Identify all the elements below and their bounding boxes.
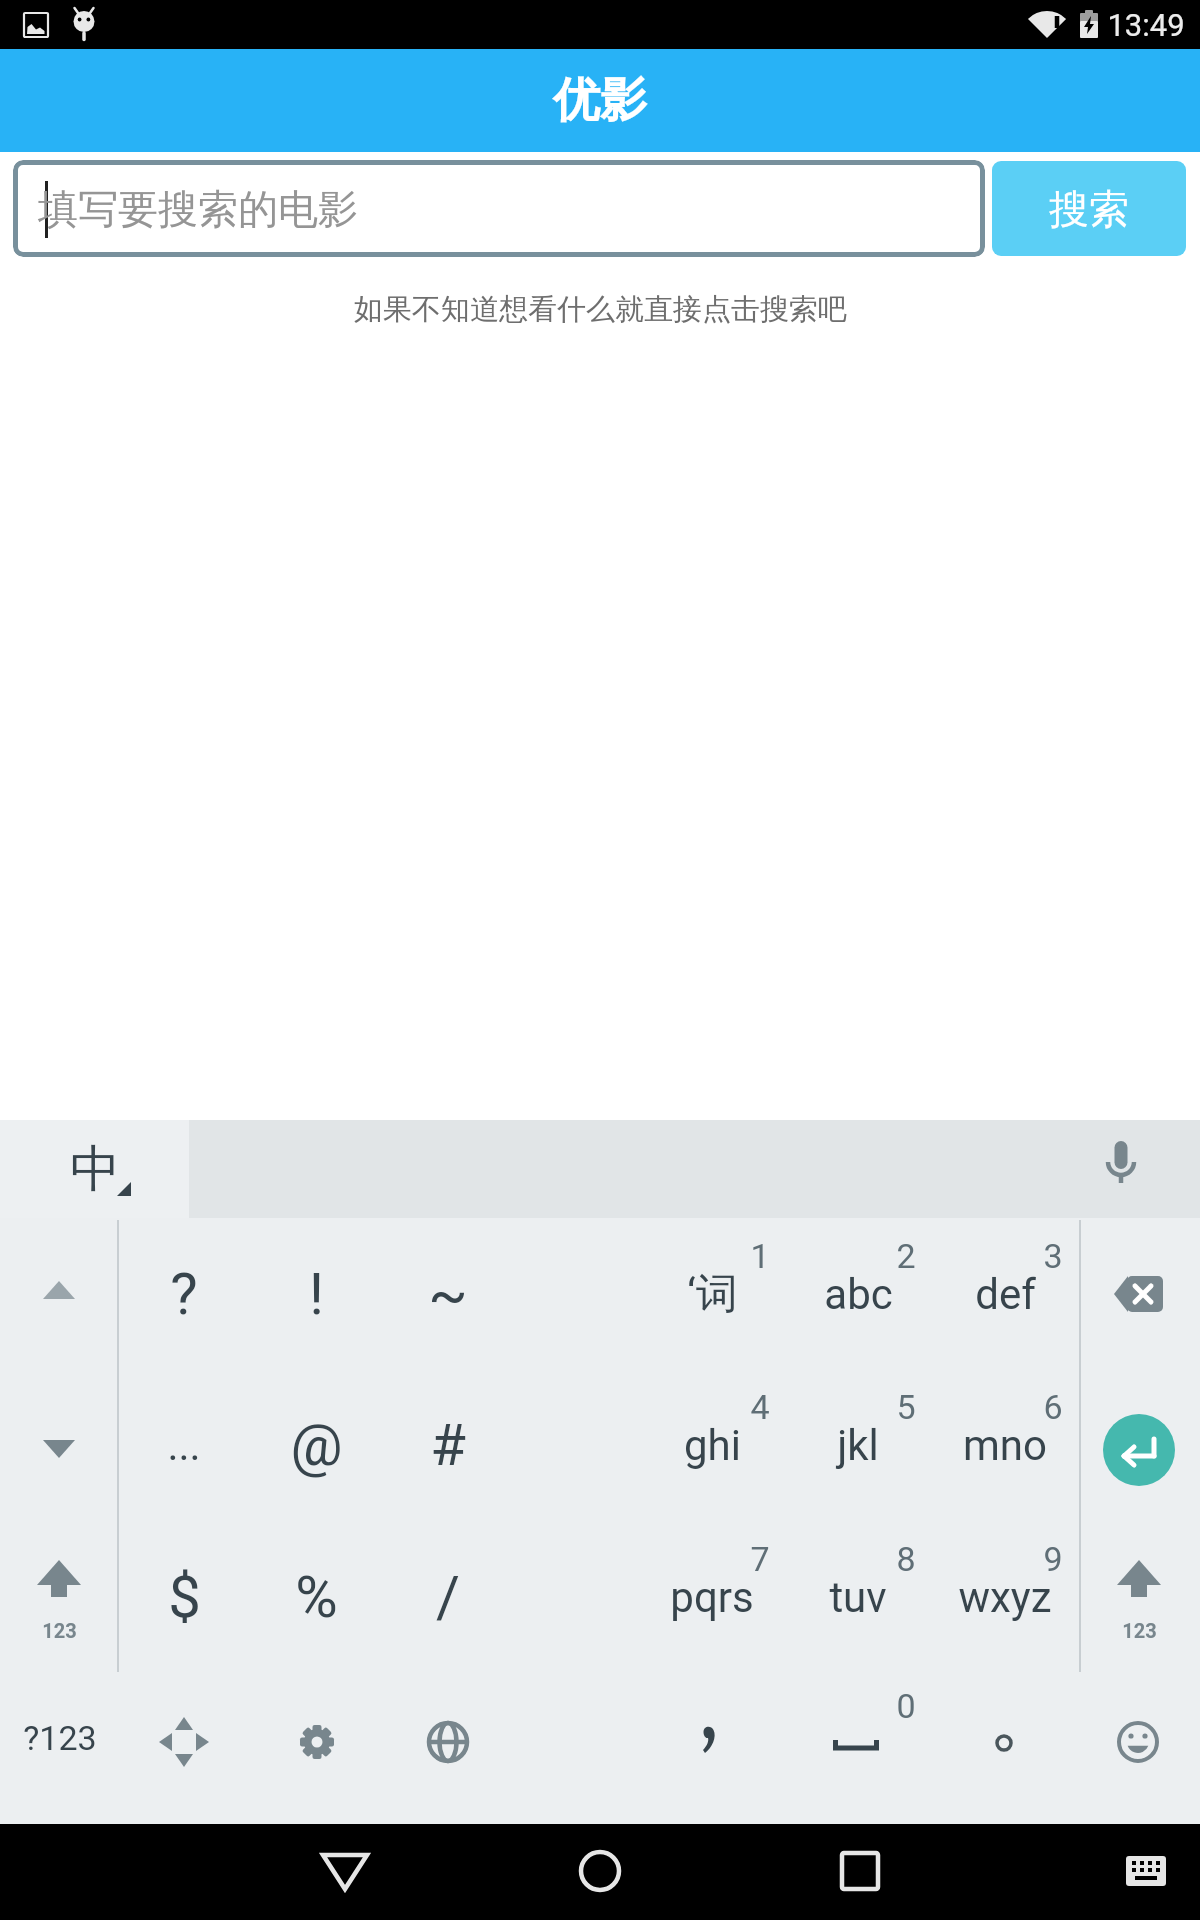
button[interactable] (1091, 1135, 1151, 1203)
button[interactable]: ~ (383, 1239, 513, 1349)
button[interactable]: ghi (647, 1390, 777, 1500)
button[interactable] (19, 1405, 99, 1485)
button[interactable]: ?123 (10, 1708, 110, 1768)
staticText: 6 (1043, 1387, 1063, 1427)
button[interactable]: abc (793, 1239, 923, 1349)
staticText: ‘词 (687, 1268, 738, 1321)
button[interactable] (959, 1698, 1049, 1788)
button[interactable]: / (383, 1542, 513, 1652)
staticText: abc (824, 1270, 893, 1319)
button[interactable]: 搜索 (992, 161, 1186, 256)
staticText: mno (963, 1421, 1047, 1470)
button[interactable]: % (251, 1542, 381, 1652)
staticText: 5 (896, 1387, 916, 1427)
staticText: tuv (829, 1573, 887, 1622)
staticText: 优影 (553, 71, 647, 130)
button[interactable] (19, 1254, 99, 1334)
button[interactable] (14, 1537, 104, 1657)
staticText: 填写要搜索的电影 (38, 184, 358, 234)
staticText: $ (168, 1563, 201, 1631)
button[interactable]: def (940, 1239, 1070, 1349)
button[interactable]: @ (251, 1390, 381, 1500)
staticText: 中 (70, 1138, 120, 1201)
button[interactable]: ! (251, 1239, 381, 1349)
button[interactable]: pqrs (647, 1542, 777, 1652)
button[interactable]: ‘词 (647, 1239, 777, 1349)
button[interactable] (665, 1697, 755, 1787)
staticText: jkl (837, 1421, 879, 1470)
button[interactable] (1106, 1830, 1186, 1910)
staticText: @ (290, 1411, 343, 1479)
staticText: 2 (896, 1236, 916, 1276)
button[interactable] (781, 1693, 931, 1803)
button[interactable] (139, 1697, 229, 1787)
staticText: wxyz (958, 1573, 1052, 1622)
button[interactable]: # (383, 1390, 513, 1500)
button[interactable] (1094, 1249, 1184, 1339)
staticText: pqrs (670, 1573, 754, 1622)
button[interactable]: $ (119, 1542, 249, 1652)
staticText: ghi (684, 1421, 741, 1470)
staticText: 如果不知道想看什么就直接点击搜索吧 (354, 291, 847, 328)
staticText: 4 (750, 1387, 770, 1427)
button[interactable]: tuv (793, 1542, 923, 1652)
staticText: ... (167, 1421, 201, 1470)
staticText: 13:49 (1107, 7, 1185, 43)
staticText: ~ (428, 1260, 468, 1328)
staticText: 搜索 (1049, 184, 1129, 234)
staticText: 9 (1043, 1539, 1063, 1579)
staticText: 7 (750, 1539, 770, 1579)
staticText: 123 (42, 1619, 77, 1642)
button[interactable]: 填写要搜索的电影 (13, 160, 985, 257)
staticText: % (295, 1563, 338, 1631)
button[interactable]: ... (119, 1390, 249, 1500)
staticText: 123 (1122, 1619, 1157, 1642)
staticText: 1 (750, 1236, 770, 1276)
staticText: 8 (896, 1539, 916, 1579)
staticText: ! (309, 1260, 324, 1328)
button[interactable]: wxyz (940, 1542, 1070, 1652)
button[interactable]: ? (119, 1239, 249, 1349)
button[interactable]: jkl (793, 1390, 923, 1500)
staticText: / (436, 1563, 460, 1631)
staticText: 3 (1043, 1236, 1063, 1276)
button[interactable] (0, 1120, 189, 1218)
button[interactable] (1103, 1414, 1175, 1486)
button[interactable] (560, 1830, 640, 1910)
button[interactable] (403, 1697, 493, 1787)
button[interactable] (0, 0, 1200, 49)
staticText: # (430, 1411, 466, 1479)
button[interactable] (1094, 1537, 1184, 1657)
button[interactable] (820, 1830, 900, 1910)
staticText: 0 (896, 1686, 916, 1726)
button[interactable]: mno (940, 1390, 1070, 1500)
button[interactable] (1093, 1697, 1183, 1787)
staticText: ?123 (23, 1718, 97, 1758)
button[interactable] (305, 1830, 385, 1910)
staticText: ? (170, 1260, 198, 1328)
button[interactable] (272, 1697, 362, 1787)
staticText: def (975, 1270, 1036, 1319)
